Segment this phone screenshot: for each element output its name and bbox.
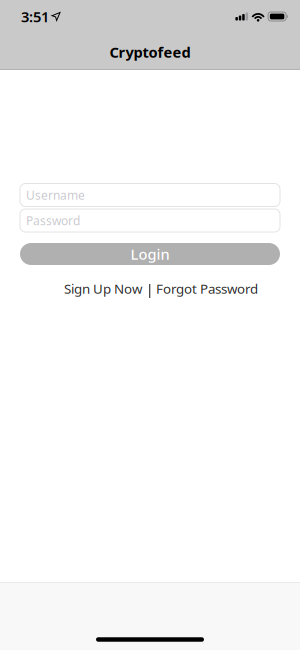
button[interactable]: Forgot Password bbox=[156, 280, 258, 297]
staticText: Login bbox=[130, 244, 169, 264]
staticText: Password bbox=[26, 212, 80, 228]
button[interactable]: Password bbox=[20, 209, 280, 232]
staticText: Forgot Password bbox=[156, 280, 258, 297]
staticText: Cryptofeed bbox=[109, 42, 190, 62]
staticText: Username bbox=[26, 187, 85, 203]
staticText: Sign Up Now bbox=[64, 280, 142, 297]
button[interactable]: Sign Up Now bbox=[64, 280, 142, 297]
button[interactable]: Login bbox=[20, 243, 280, 265]
button[interactable]: Username bbox=[20, 183, 280, 206]
staticText: 3:51 bbox=[21, 7, 49, 26]
